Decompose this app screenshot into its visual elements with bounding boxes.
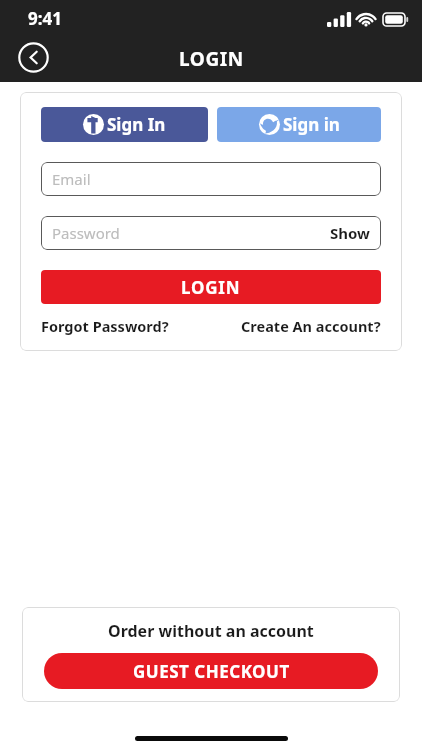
button[interactable]: Forgot Password? xyxy=(41,316,169,336)
staticText: Sign In xyxy=(107,113,166,136)
staticText: LOGIN xyxy=(179,46,244,72)
button[interactable]: Create An account? xyxy=(241,316,381,336)
staticText: Email xyxy=(52,169,91,189)
button[interactable]: LOGIN xyxy=(41,270,381,304)
staticText: LOGIN xyxy=(181,276,241,299)
button[interactable]: Sign in xyxy=(217,107,381,142)
staticText: GUEST CHECKOUT xyxy=(133,660,290,683)
button[interactable]: Email xyxy=(41,162,381,196)
staticText: Show xyxy=(330,223,370,243)
staticText: 9:41 xyxy=(28,7,62,30)
staticText: Forgot Password? xyxy=(41,316,169,336)
button[interactable]: Sign In xyxy=(41,107,208,142)
staticText: Sign in xyxy=(283,113,340,136)
button[interactable]: GUEST CHECKOUT xyxy=(44,653,378,689)
button[interactable]: Back xyxy=(18,42,49,73)
staticText: Password xyxy=(52,223,120,243)
staticText: Create An account? xyxy=(241,316,381,336)
staticText: Order without an account xyxy=(108,620,314,642)
button[interactable]: Password xyxy=(41,216,381,250)
